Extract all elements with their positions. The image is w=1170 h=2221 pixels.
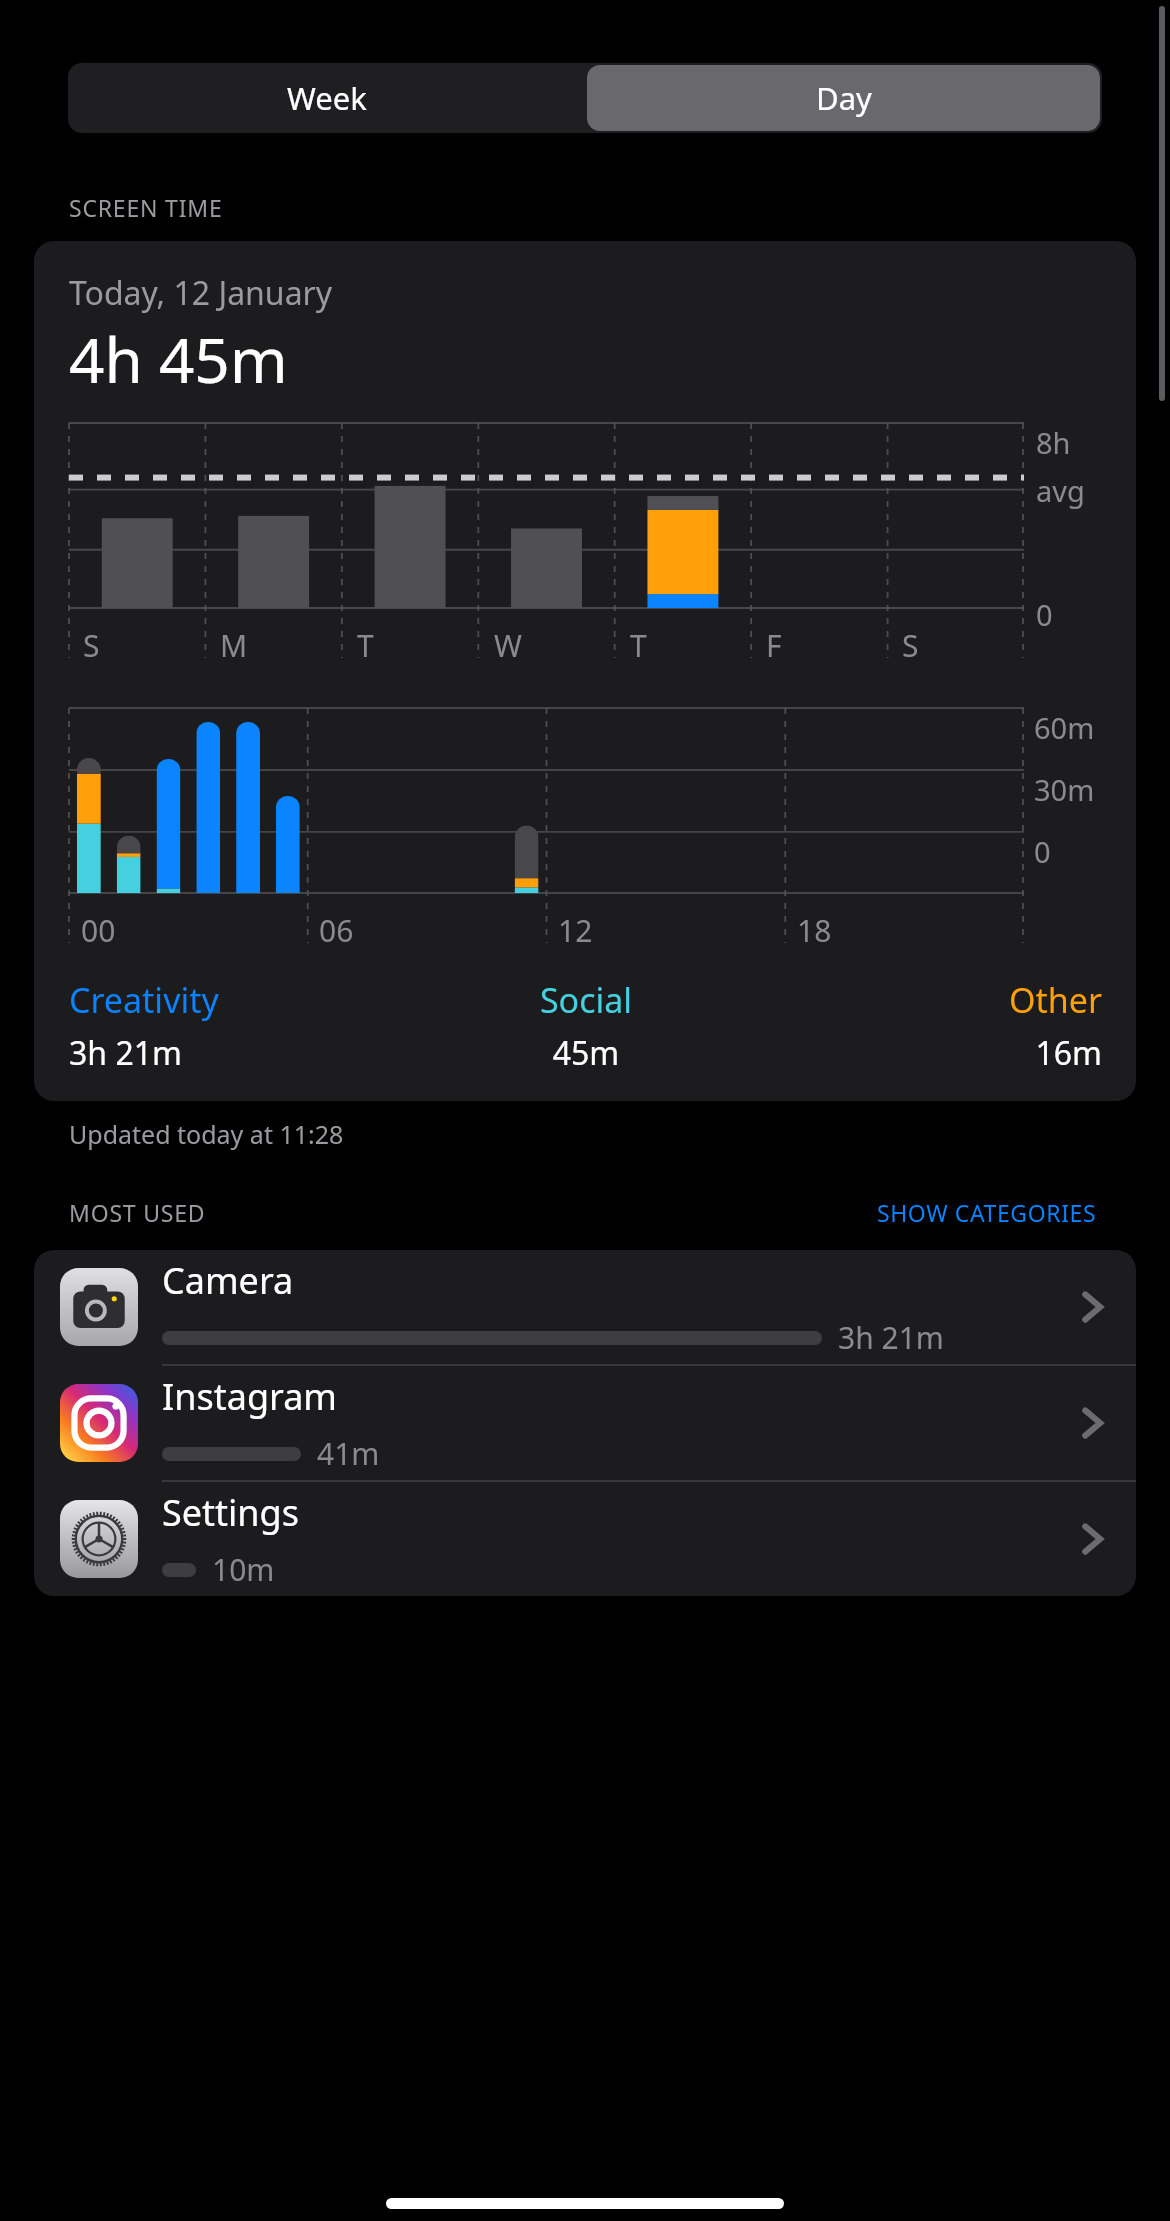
staticText: Today, 12 January — [69, 271, 333, 315]
button[interactable]: Camera — [34, 1250, 1136, 1364]
staticText: 00 — [81, 910, 116, 951]
button[interactable]: Settings — [34, 1482, 1136, 1596]
staticText: 41m — [317, 1433, 380, 1474]
staticText: T — [357, 625, 374, 666]
staticText: 3h 21m — [69, 1031, 414, 1075]
staticText: 10m — [212, 1549, 275, 1590]
staticText: 30m — [1034, 770, 1095, 809]
staticText: 45m — [414, 1031, 758, 1075]
button[interactable]: SHOW CATEGORIES — [873, 1193, 1101, 1232]
staticText: SHOW CATEGORIES — [877, 1197, 1097, 1228]
staticText: MOST USED — [69, 1197, 206, 1228]
staticText: Social — [414, 977, 758, 1023]
staticText: avg — [1036, 471, 1085, 510]
staticText: 16m — [758, 1031, 1102, 1075]
button[interactable]: Day — [587, 65, 1100, 131]
staticText: Updated today at 11:28 — [69, 1117, 344, 1151]
staticText: 06 — [319, 910, 354, 951]
staticText: SCREEN TIME — [69, 192, 223, 223]
staticText: 12 — [558, 910, 593, 951]
other: Open Instagram details — [1070, 1401, 1114, 1445]
staticText: 0 — [1036, 595, 1053, 634]
staticText: S — [902, 625, 919, 666]
staticText: 0 — [1034, 832, 1051, 871]
staticText: Camera — [162, 1256, 294, 1305]
button[interactable]: Today, 12 January — [34, 241, 1136, 1101]
staticText: Week — [287, 77, 367, 119]
staticText: Creativity — [69, 977, 414, 1023]
staticText: M — [220, 625, 248, 666]
staticText: 60m — [1034, 708, 1095, 747]
staticText: 4h 45m — [69, 317, 288, 401]
other: Open Settings details — [1070, 1517, 1114, 1561]
staticText: S — [83, 625, 100, 666]
staticText: Other — [758, 977, 1102, 1023]
staticText: Day — [816, 77, 872, 119]
staticText: W — [494, 625, 522, 666]
staticText: Settings — [162, 1488, 299, 1537]
other: Open Camera details — [1070, 1285, 1114, 1329]
button[interactable]: Instagram — [34, 1366, 1136, 1480]
button[interactable]: Creativity — [69, 977, 414, 1075]
staticText: T — [630, 625, 647, 666]
button[interactable]: Other — [758, 977, 1102, 1075]
button[interactable]: Social — [414, 977, 758, 1075]
button[interactable]: Week — [68, 63, 585, 133]
staticText: 18 — [797, 910, 832, 951]
staticText: 8h — [1036, 423, 1071, 462]
staticText: F — [766, 625, 782, 666]
staticText: 3h 21m — [838, 1317, 944, 1358]
staticText: Instagram — [162, 1372, 338, 1421]
